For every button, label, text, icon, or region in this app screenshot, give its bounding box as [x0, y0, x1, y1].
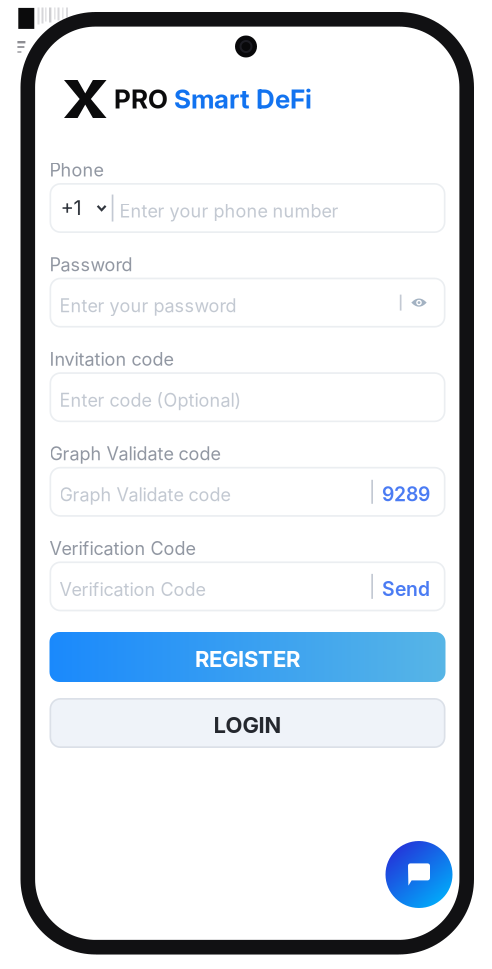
staticText: Send — [382, 577, 430, 601]
button[interactable]: 9289 — [373, 467, 439, 517]
button[interactable]: LOGIN — [49, 698, 445, 748]
staticText: 9289 — [382, 483, 430, 506]
button[interactable]: +1 — [49, 183, 445, 233]
staticText: REGISTER — [195, 646, 300, 672]
staticText: +1 — [60, 196, 81, 220]
staticText: Smart DeFi — [168, 83, 312, 115]
button[interactable]: Send — [373, 561, 439, 611]
staticText: Enter your phone number — [119, 200, 338, 222]
staticText: Invitation code — [49, 348, 173, 370]
staticText: Verification Code — [49, 537, 195, 559]
staticText: PRO — [114, 83, 168, 115]
button[interactable]: Show password — [401, 278, 436, 328]
staticText: Graph Validate code — [59, 484, 230, 506]
staticText: Verification Code — [59, 578, 205, 600]
staticText: Enter code (Optional) — [59, 389, 241, 411]
staticText: Phone — [49, 159, 103, 181]
staticText: Password — [49, 254, 132, 275]
staticText: Graph Validate code — [49, 443, 220, 465]
button[interactable]: REGISTER — [49, 632, 445, 682]
button[interactable]: Chat support — [385, 841, 452, 908]
staticText: LOGIN — [213, 712, 281, 738]
staticText: Enter your password — [59, 295, 236, 316]
button[interactable]: Enter code (Optional) — [49, 372, 445, 422]
